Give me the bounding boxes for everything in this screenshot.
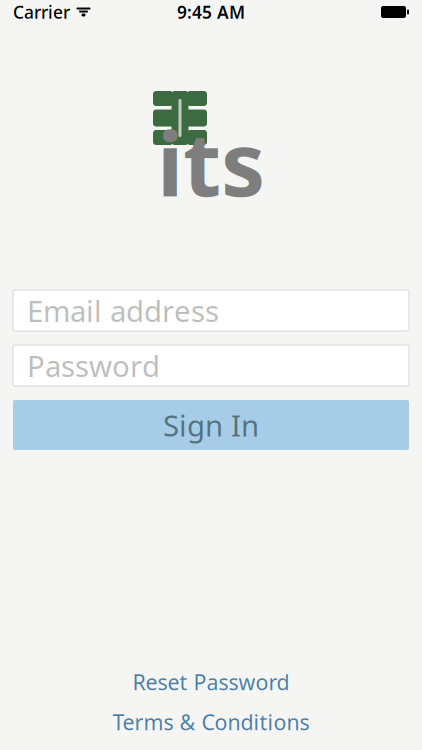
staticText: Carrier	[13, 0, 70, 23]
button[interactable]: Terms & Conditions	[0, 702, 422, 742]
button[interactable]: Email address	[13, 290, 409, 331]
button[interactable]: Sign In	[13, 400, 409, 450]
staticText: Password	[27, 346, 160, 385]
staticText: Terms & Conditions	[112, 708, 309, 736]
staticText: Reset Password	[132, 668, 289, 696]
button[interactable]: Reset Password	[0, 662, 422, 702]
staticText: Sign In	[163, 405, 259, 444]
staticText: Email address	[27, 291, 219, 330]
staticText: its	[157, 104, 265, 220]
staticText: 9:45 AM	[177, 0, 245, 23]
button[interactable]: Password	[13, 345, 409, 386]
